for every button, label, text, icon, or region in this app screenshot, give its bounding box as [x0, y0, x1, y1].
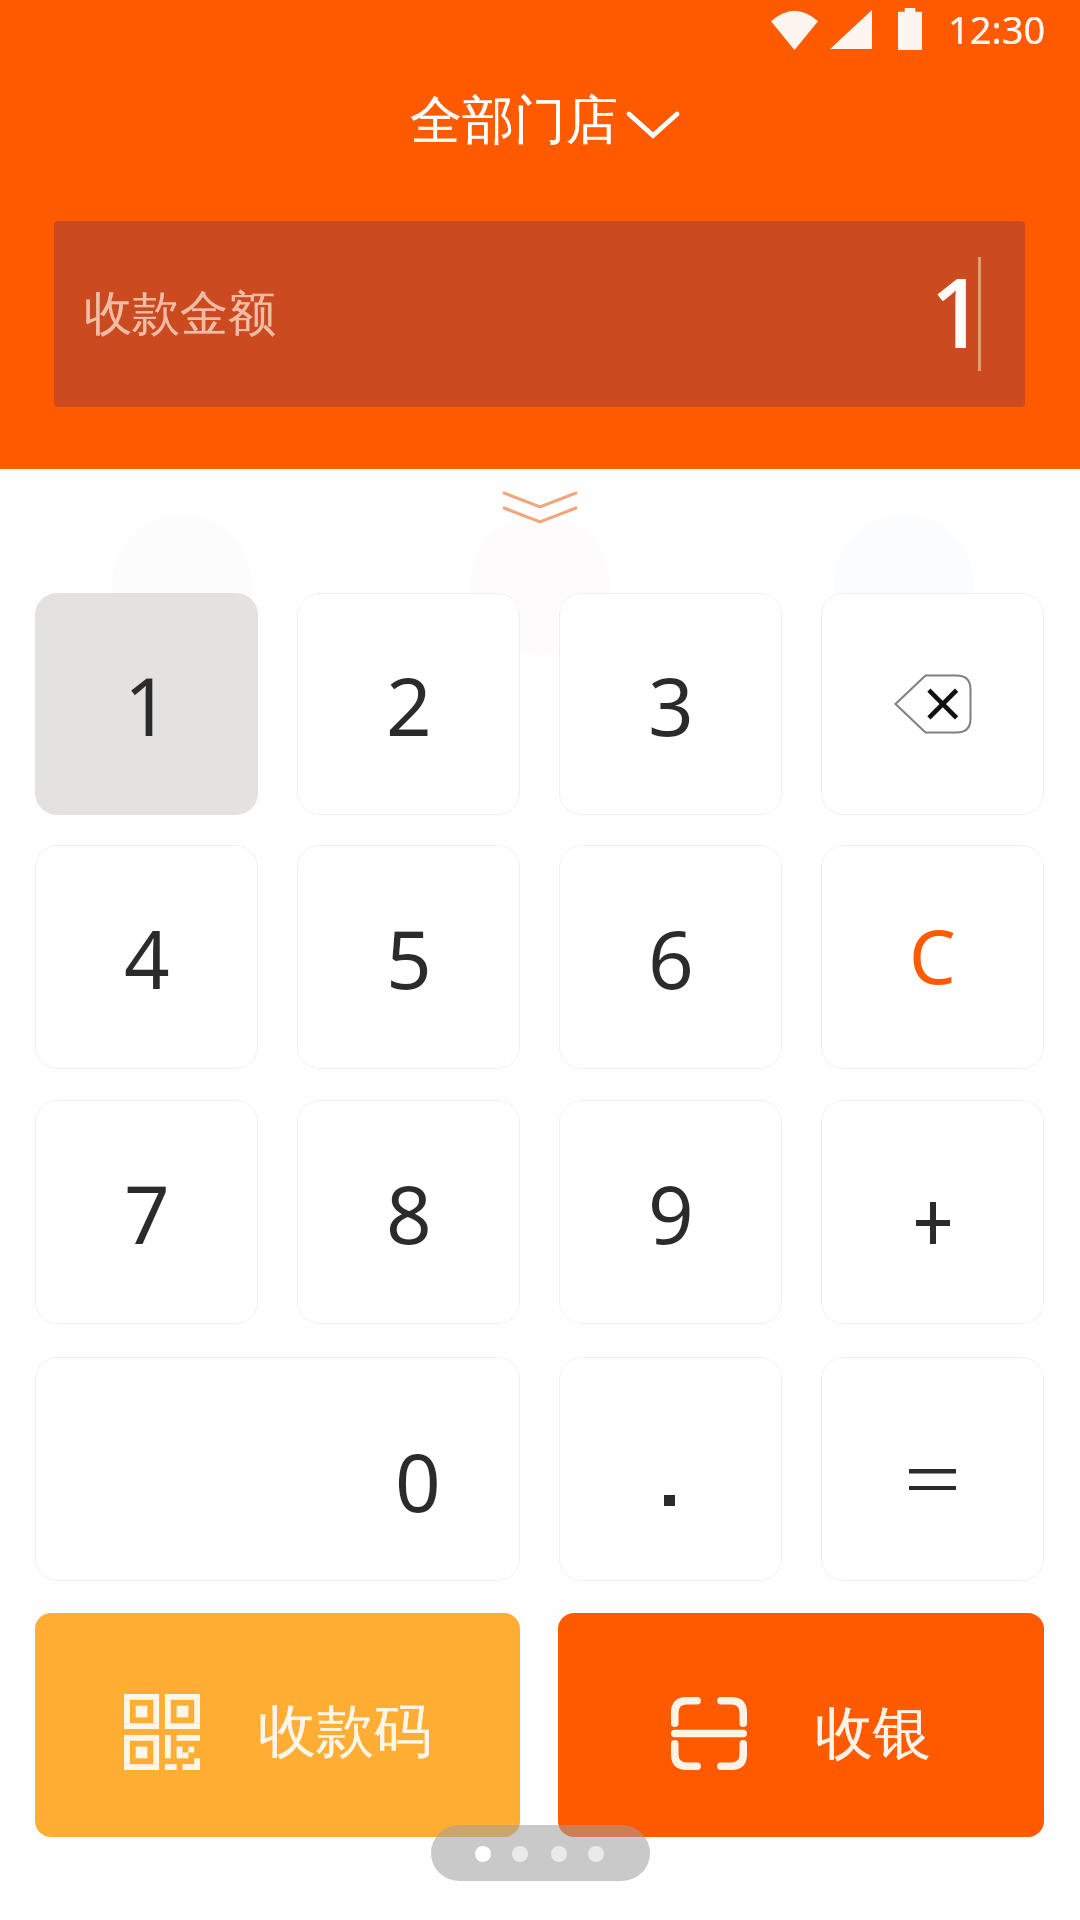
staticText: C [909, 905, 956, 1006]
button[interactable]: 0 [35, 1357, 520, 1581]
button[interactable]: 1 [35, 593, 258, 815]
staticText: 4 [124, 903, 170, 1012]
button[interactable]: 收款金额 [54, 221, 1025, 407]
staticText: 全部门店 [410, 88, 618, 154]
button[interactable]: 6 [559, 845, 782, 1069]
staticText: 6 [648, 903, 694, 1012]
button[interactable]: Equals [821, 1357, 1044, 1581]
staticText: 9 [648, 1158, 694, 1267]
staticText: 收银 [815, 1697, 931, 1770]
button[interactable]: 8 [297, 1100, 520, 1324]
button[interactable]: Pages [431, 1825, 650, 1881]
button[interactable]: 收款码 [35, 1613, 520, 1837]
staticText: 7 [124, 1158, 170, 1267]
button[interactable]: Plus [821, 1100, 1044, 1324]
staticText: 12:30 [948, 3, 1046, 55]
staticText: 1 [124, 650, 170, 759]
button[interactable]: 5 [297, 845, 520, 1069]
button[interactable]: 9 [559, 1100, 782, 1324]
button[interactable]: 收银 [558, 1613, 1044, 1837]
button[interactable]: 4 [35, 845, 258, 1069]
staticText: 2 [386, 650, 432, 759]
staticText: 收款码 [258, 1695, 432, 1768]
button[interactable]: Decimal point [559, 1357, 782, 1581]
button[interactable]: 7 [35, 1100, 258, 1324]
staticText: 1 [930, 245, 985, 376]
button[interactable]: 2 [297, 593, 520, 815]
staticText: 0 [395, 1426, 441, 1535]
button[interactable]: Backspace [821, 593, 1044, 815]
button[interactable]: Clear [821, 845, 1044, 1069]
button[interactable]: 3 [559, 593, 782, 815]
staticText: 收款金额 [84, 284, 276, 344]
staticText: 8 [386, 1158, 432, 1267]
staticText: 5 [386, 903, 432, 1012]
button[interactable]: 全部门店 [396, 80, 694, 162]
staticText: 3 [648, 650, 694, 759]
